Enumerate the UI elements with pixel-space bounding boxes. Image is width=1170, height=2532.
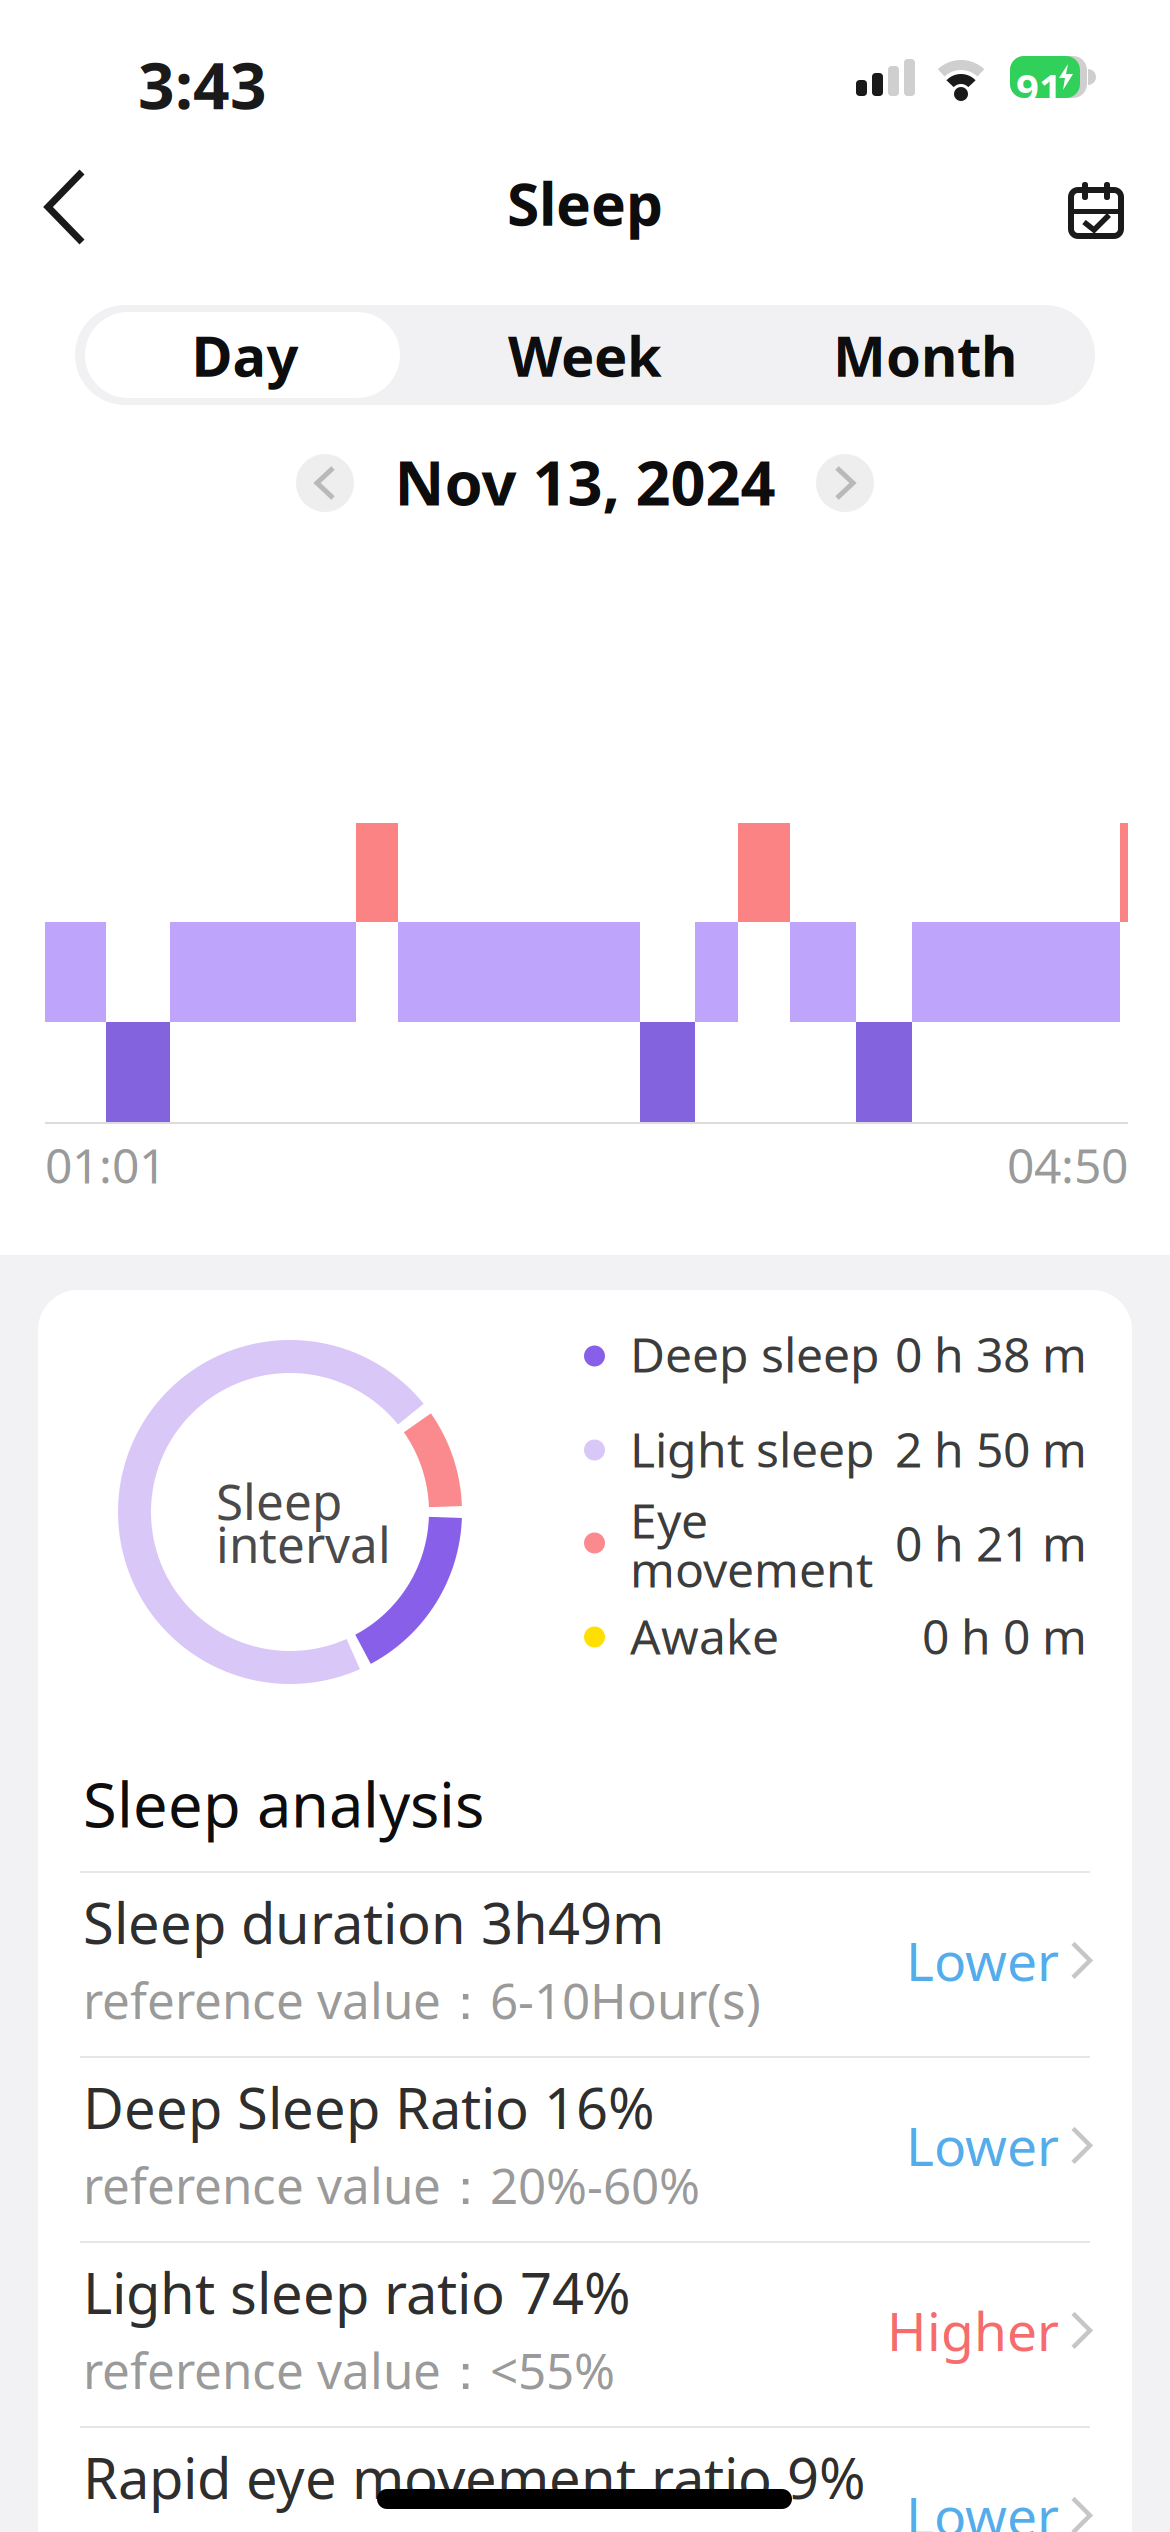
staticText: 0 h 38 m bbox=[895, 1322, 1087, 1386]
staticText: 0 h 21 m bbox=[895, 1511, 1087, 1575]
button[interactable] bbox=[816, 454, 874, 512]
staticText: reference value：6-10Hour(s) bbox=[83, 1967, 761, 2033]
staticText: interval bbox=[216, 1511, 391, 1576]
staticText: Sleep duration 3h49m bbox=[83, 1885, 664, 1959]
button[interactable]: Day bbox=[75, 305, 415, 405]
staticText: 3:43 bbox=[138, 42, 267, 127]
staticText: Sleep bbox=[216, 1468, 342, 1533]
staticText: Higher bbox=[887, 2295, 1059, 2366]
staticText: reference value：20%-60% bbox=[83, 2152, 700, 2218]
staticText: reference value：<55% bbox=[83, 2337, 615, 2403]
staticText: Month bbox=[833, 318, 1017, 392]
button[interactable]: Light sleep ratio 74% bbox=[80, 2243, 1090, 2426]
button[interactable] bbox=[1061, 172, 1131, 246]
staticText: Eye bbox=[630, 1488, 708, 1552]
button[interactable]: Rapid eye movement ratio 9% bbox=[80, 2428, 1090, 2532]
button[interactable] bbox=[34, 158, 96, 256]
staticText: Rapid eye movement ratio 9% bbox=[83, 2440, 866, 2514]
button[interactable]: Deep Sleep Ratio 16% bbox=[80, 2058, 1090, 2241]
staticText: 91 bbox=[1016, 61, 1062, 114]
staticText: Light sleep bbox=[630, 1417, 875, 1481]
staticText: 2 h 50 m bbox=[895, 1417, 1087, 1481]
staticText: 01:01 bbox=[45, 1133, 166, 1197]
button[interactable]: Sleep duration 3h49m bbox=[80, 1873, 1090, 2056]
staticText: Deep Sleep Ratio 16% bbox=[83, 2070, 655, 2144]
staticText: 0 h 0 m bbox=[922, 1604, 1087, 1668]
staticText: Sleep bbox=[507, 164, 663, 242]
staticText: Lower bbox=[906, 2110, 1059, 2181]
staticText: Week bbox=[508, 318, 662, 392]
button[interactable]: Month bbox=[755, 305, 1095, 405]
button[interactable] bbox=[296, 454, 354, 512]
staticText: Light sleep ratio 74% bbox=[83, 2255, 631, 2329]
staticText: Awake bbox=[630, 1604, 779, 1668]
staticText: Deep sleep bbox=[630, 1322, 880, 1386]
staticText: Nov 13, 2024 bbox=[394, 441, 775, 522]
staticText: movement bbox=[630, 1537, 873, 1601]
button[interactable]: Week bbox=[415, 305, 755, 405]
staticText: Day bbox=[191, 318, 298, 392]
staticText: 04:50 bbox=[1007, 1133, 1128, 1197]
staticText: Sleep analysis bbox=[83, 1763, 484, 1844]
staticText: Lower bbox=[906, 2480, 1059, 2532]
staticText: Lower bbox=[906, 1925, 1059, 1996]
